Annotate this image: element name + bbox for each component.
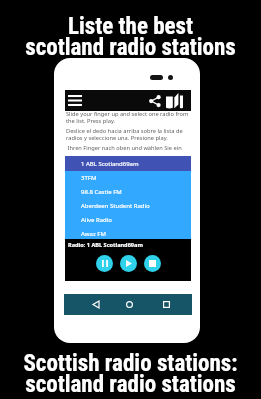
button[interactable]: Alive Radio (65, 213, 191, 227)
staticText: Liste the best scotland radio stations (0, 13, 261, 61)
staticText: Deslice el dedo hacia arriba sobre la li… (66, 127, 191, 142)
button[interactable]: Recent apps (156, 294, 177, 315)
button[interactable]: Menu (65, 91, 84, 110)
staticText: Awaz FM (81, 230, 106, 238)
staticText: Aberdeen Student Radio (81, 202, 150, 210)
button[interactable]: Home (119, 294, 140, 315)
staticText: Radio: 1 ABL Scotland69am (68, 241, 143, 249)
button[interactable]: Awaz FM (65, 227, 191, 240)
staticText: Alive Radio (81, 216, 112, 224)
button[interactable]: Aberdeen Student Radio (65, 199, 191, 213)
button[interactable]: Library (165, 91, 184, 110)
button[interactable]: Share (145, 91, 164, 110)
button[interactable]: 98.8 Castle FM (65, 185, 191, 199)
staticText: 1 ABL Scotland69am (81, 160, 139, 168)
button[interactable]: Back (85, 294, 106, 315)
button[interactable]: 3TFM (65, 171, 191, 185)
button[interactable]: 1 ABL Scotland69am (65, 156, 191, 171)
staticText: 3TFM (81, 174, 97, 182)
button[interactable]: Stop (144, 255, 161, 272)
staticText: 98.8 Castle FM (81, 188, 122, 196)
button[interactable]: Play (120, 255, 137, 272)
button[interactable]: Pause (96, 255, 113, 272)
staticText: Scottish radio stations: scotland radio … (0, 350, 261, 398)
staticText: Slide your finger up and select one radi… (66, 110, 191, 125)
staticText: Ihren Finger nach oben und wählen Sie ei… (66, 144, 191, 152)
